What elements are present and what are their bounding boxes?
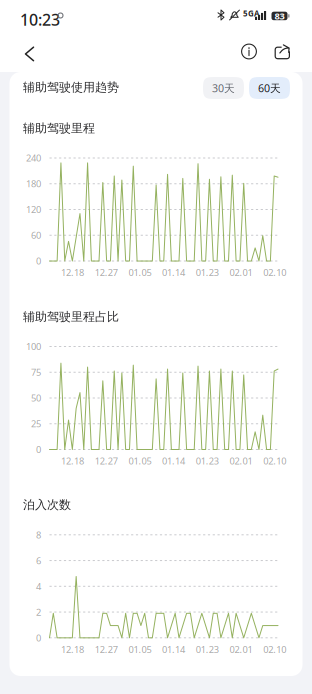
staticText: 60 [31, 229, 41, 241]
button[interactable]: Back [16, 38, 42, 70]
staticText: 12.27 [95, 266, 118, 279]
staticText: 01.14 [162, 643, 185, 655]
staticText: 02.10 [263, 643, 286, 655]
staticText: 02.01 [229, 643, 252, 655]
staticText: 50 [31, 392, 41, 404]
staticText: 12.18 [61, 643, 84, 655]
button[interactable]: Information [234, 36, 264, 66]
button[interactable]: 30天 [203, 77, 244, 99]
staticText: 12.27 [95, 455, 118, 467]
staticText: 01.14 [162, 266, 185, 279]
staticText: 120 [26, 203, 41, 216]
staticText: 02.01 [229, 266, 252, 279]
staticText: 辅助驾驶使用趋势 [23, 80, 119, 95]
staticText: 02.10 [263, 455, 286, 467]
staticText: 5GA [243, 8, 260, 19]
staticText: 01.05 [128, 643, 151, 655]
staticText: 02.10 [263, 266, 286, 279]
staticText: 0 [36, 443, 41, 456]
staticText: 83 [274, 10, 284, 22]
staticText: 02.01 [229, 455, 252, 467]
staticText: 8 [36, 529, 41, 541]
staticText: 10:23 [20, 9, 60, 30]
staticText: 60天 [258, 81, 281, 95]
staticText: 辅助驾驶里程占比 [23, 309, 119, 324]
staticText: 12.18 [61, 266, 84, 279]
staticText: 4 [36, 580, 41, 592]
staticText: 泊入次数 [23, 497, 71, 512]
staticText: 12.18 [61, 455, 84, 467]
staticText: 0 [36, 255, 41, 267]
staticText: 240 [26, 152, 41, 164]
button[interactable]: 60天 [249, 77, 290, 99]
staticText: 2 [36, 606, 41, 618]
staticText: 01.05 [128, 455, 151, 467]
staticText: 01.14 [162, 455, 185, 467]
staticText: 01.23 [196, 643, 219, 655]
button[interactable]: Share [268, 37, 296, 66]
staticText: 辅助驾驶里程 [23, 121, 95, 136]
staticText: 100 [26, 340, 41, 353]
staticText: 25 [31, 418, 41, 430]
staticText: 6 [36, 554, 41, 567]
staticText: 01.05 [128, 266, 151, 279]
staticText: 12.27 [95, 643, 118, 655]
staticText: 75 [31, 366, 41, 378]
staticText: 01.23 [196, 266, 219, 279]
staticText: 01.23 [196, 455, 219, 467]
staticText: 30天 [212, 81, 235, 95]
staticText: 0 [36, 632, 41, 644]
staticText: 180 [26, 178, 41, 190]
